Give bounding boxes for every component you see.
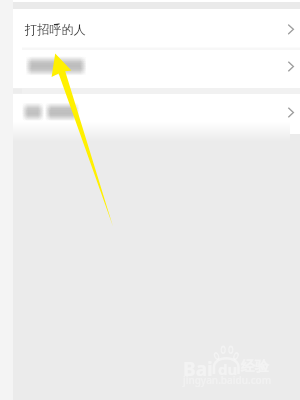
button[interactable]: 联系人 bbox=[13, 50, 300, 89]
button[interactable]: 联系人 bbox=[13, 94, 300, 134]
button[interactable]: 打招呼的人 bbox=[13, 9, 300, 48]
staticText: 打招呼的人 bbox=[25, 22, 86, 37]
other: 打招呼的人 bbox=[281, 21, 297, 37]
staticText: du bbox=[218, 359, 238, 379]
staticText: Bai bbox=[183, 356, 213, 382]
staticText: 经验 bbox=[241, 358, 269, 376]
